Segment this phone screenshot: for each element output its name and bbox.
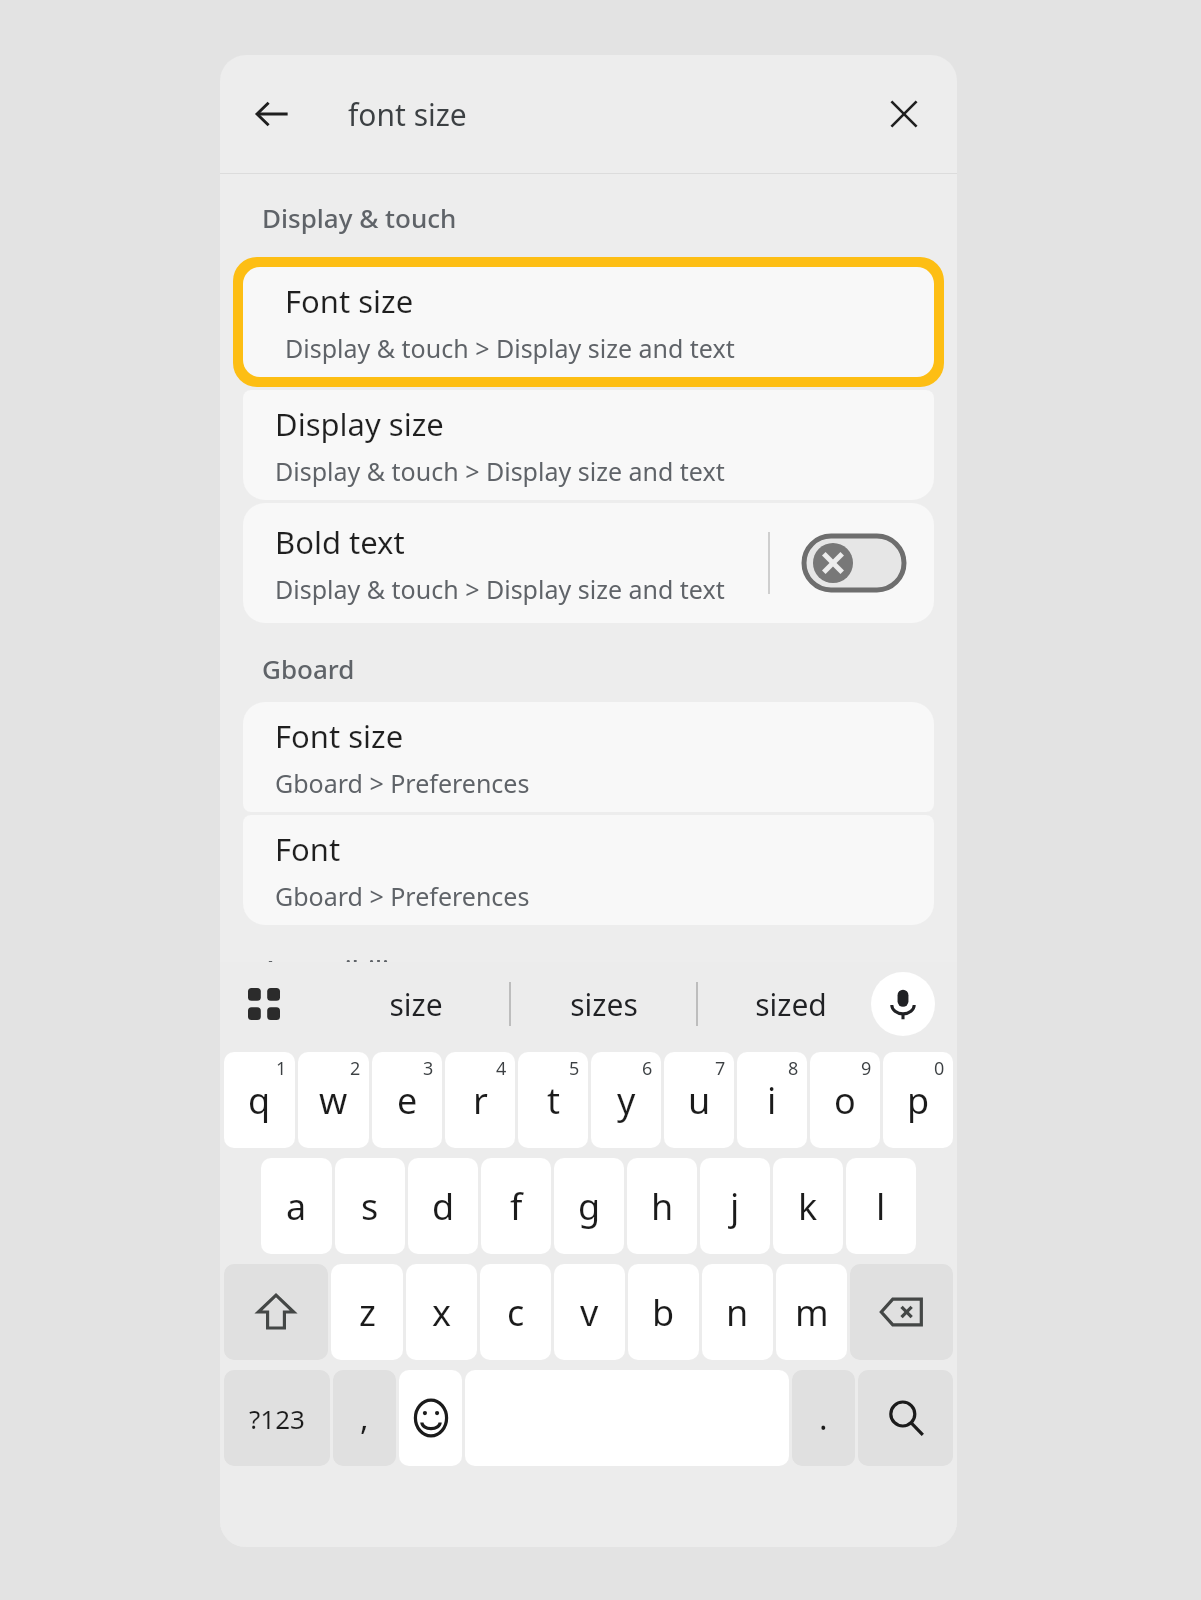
button[interactable]: j bbox=[700, 1158, 770, 1254]
staticText: r bbox=[473, 1076, 488, 1125]
staticText: a bbox=[286, 1182, 307, 1231]
button[interactable]: u bbox=[664, 1052, 734, 1148]
button[interactable]: a bbox=[261, 1158, 332, 1254]
staticText: sized bbox=[755, 984, 827, 1025]
button[interactable]: , bbox=[333, 1370, 396, 1466]
staticText: Display & touch > Display size and text bbox=[285, 331, 735, 365]
staticText: Gboard bbox=[262, 651, 355, 686]
staticText: font size bbox=[348, 94, 467, 135]
button[interactable]: Font size bbox=[243, 702, 934, 812]
staticText: Font size bbox=[275, 715, 404, 757]
button[interactable]: size bbox=[323, 962, 509, 1046]
button[interactable]: Toolbar bbox=[234, 974, 294, 1034]
button[interactable]: d bbox=[408, 1158, 478, 1254]
button[interactable]: Emoji bbox=[399, 1370, 462, 1466]
button[interactable]: Bold text toggle, off bbox=[802, 534, 906, 592]
staticText: y bbox=[617, 1076, 636, 1125]
button[interactable]: g bbox=[554, 1158, 624, 1254]
button[interactable]: sized bbox=[698, 962, 883, 1046]
staticText: 5 bbox=[569, 1056, 580, 1081]
staticText: , bbox=[360, 1396, 369, 1440]
button[interactable]: Display size bbox=[243, 390, 934, 500]
staticText: 4 bbox=[496, 1056, 507, 1081]
staticText: l bbox=[876, 1182, 886, 1231]
button[interactable]: e bbox=[372, 1052, 442, 1148]
staticText: s bbox=[361, 1182, 379, 1231]
button[interactable]: x bbox=[406, 1264, 477, 1360]
staticText: Bold text bbox=[275, 521, 405, 563]
button[interactable]: c bbox=[480, 1264, 551, 1360]
staticText: c bbox=[507, 1288, 525, 1337]
button[interactable]: Voice input bbox=[871, 972, 935, 1036]
staticText: k bbox=[798, 1182, 818, 1231]
button[interactable]: b bbox=[628, 1264, 699, 1360]
button[interactable]: h bbox=[627, 1158, 697, 1254]
staticText: i bbox=[767, 1076, 777, 1125]
staticText: b bbox=[652, 1288, 675, 1337]
staticText: 7 bbox=[715, 1056, 726, 1081]
button[interactable]: Font bbox=[243, 815, 934, 925]
staticText: Font bbox=[275, 828, 341, 870]
button[interactable]: Back bbox=[240, 82, 304, 146]
button[interactable]: t bbox=[518, 1052, 588, 1148]
staticText: t bbox=[547, 1076, 560, 1125]
staticText: v bbox=[580, 1288, 599, 1337]
button[interactable]: Font size bbox=[243, 267, 934, 377]
staticText: 1 bbox=[276, 1056, 287, 1081]
staticText: 2 bbox=[350, 1056, 361, 1081]
staticText: sizes bbox=[570, 984, 638, 1025]
button[interactable]: v bbox=[554, 1264, 625, 1360]
staticText: . bbox=[819, 1396, 828, 1440]
button[interactable]: o bbox=[810, 1052, 880, 1148]
button[interactable]: Shift bbox=[224, 1264, 328, 1360]
staticText: j bbox=[730, 1182, 740, 1231]
staticText: Display size bbox=[275, 403, 444, 445]
staticText: 8 bbox=[788, 1056, 799, 1081]
staticText: Display & touch bbox=[262, 200, 457, 235]
button[interactable]: l bbox=[846, 1158, 916, 1254]
staticText: e bbox=[397, 1076, 418, 1125]
staticText: Font size bbox=[285, 280, 414, 322]
button[interactable]: sizes bbox=[511, 962, 696, 1046]
staticText: p bbox=[907, 1076, 930, 1125]
staticText: q bbox=[248, 1076, 271, 1125]
staticText: h bbox=[651, 1182, 674, 1231]
button[interactable]: q bbox=[224, 1052, 295, 1148]
button[interactable]: r bbox=[445, 1052, 515, 1148]
button[interactable]: z bbox=[331, 1264, 403, 1360]
staticText: o bbox=[834, 1076, 856, 1125]
staticText: n bbox=[726, 1288, 749, 1337]
staticText: size bbox=[389, 984, 443, 1025]
staticText: Accessibility bbox=[262, 951, 413, 986]
button[interactable]: . bbox=[792, 1370, 855, 1466]
staticText: 0 bbox=[934, 1056, 945, 1081]
staticText: f bbox=[510, 1182, 523, 1231]
staticText: x bbox=[432, 1288, 452, 1337]
button[interactable]: y bbox=[591, 1052, 661, 1148]
staticText: Gboard > Preferences bbox=[275, 766, 530, 800]
button[interactable]: ?123 bbox=[224, 1370, 330, 1466]
staticText: g bbox=[578, 1182, 601, 1231]
button[interactable]: n bbox=[702, 1264, 773, 1360]
staticText: u bbox=[688, 1076, 711, 1125]
button[interactable]: w bbox=[298, 1052, 369, 1148]
button[interactable]: f bbox=[481, 1158, 551, 1254]
staticText: 9 bbox=[861, 1056, 872, 1081]
staticText: w bbox=[319, 1076, 348, 1125]
button[interactable]: p bbox=[883, 1052, 953, 1148]
button[interactable]: Bold text bbox=[243, 503, 934, 623]
button[interactable]: Backspace bbox=[850, 1264, 953, 1360]
button[interactable]: i bbox=[737, 1052, 807, 1148]
staticText: 6 bbox=[642, 1056, 653, 1081]
staticText: d bbox=[432, 1182, 455, 1231]
staticText: Display & touch > Display size and text bbox=[275, 454, 725, 488]
button[interactable]: Clear search bbox=[873, 83, 935, 145]
button[interactable]: k bbox=[773, 1158, 843, 1254]
staticText: z bbox=[359, 1288, 376, 1337]
button[interactable]: m bbox=[776, 1264, 847, 1360]
staticText: ?123 bbox=[249, 1401, 305, 1436]
button[interactable]: s bbox=[335, 1158, 405, 1254]
staticText: 3 bbox=[423, 1056, 434, 1081]
button[interactable]: Search bbox=[858, 1370, 953, 1466]
